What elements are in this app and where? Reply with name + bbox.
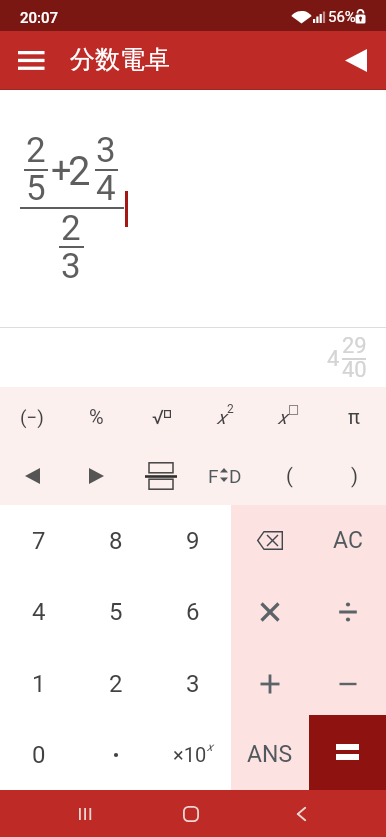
button[interactable]: 0 xyxy=(0,719,77,790)
button[interactable] xyxy=(167,790,215,837)
button[interactable]: ANS xyxy=(231,719,309,790)
button[interactable]: ×10 xyxy=(154,719,231,790)
staticText: 3 xyxy=(186,670,200,698)
staticText: ) xyxy=(351,464,358,487)
button[interactable]: ( xyxy=(257,446,321,505)
staticText: 40 xyxy=(342,357,367,383)
button[interactable] xyxy=(77,719,154,790)
staticText: 5 xyxy=(26,168,46,209)
button[interactable] xyxy=(8,37,54,83)
button[interactable] xyxy=(129,446,193,505)
button[interactable] xyxy=(277,790,325,837)
staticText: 3 xyxy=(61,246,81,287)
staticText: 0 xyxy=(32,741,46,769)
staticText: x xyxy=(217,406,227,428)
staticText: 2 xyxy=(68,148,91,195)
staticText: 分数電卓 xyxy=(70,44,170,75)
button[interactable]: 5 xyxy=(77,576,154,647)
staticText: + xyxy=(51,150,72,192)
button[interactable] xyxy=(64,446,128,505)
staticText: F xyxy=(208,465,219,487)
staticText: 3 xyxy=(96,130,116,171)
staticText: ( xyxy=(286,464,293,487)
button[interactable]: 4 xyxy=(0,576,77,647)
staticText: 2 xyxy=(109,670,123,698)
button[interactable]: AC xyxy=(309,505,386,576)
button[interactable]: x xyxy=(193,387,257,446)
staticText: 4 xyxy=(96,168,116,209)
staticText: π xyxy=(348,405,360,428)
staticText: D xyxy=(229,465,242,487)
staticText: 9 xyxy=(186,527,200,555)
staticText: 6 xyxy=(186,598,200,626)
staticText: x xyxy=(278,406,288,428)
staticText: 56% xyxy=(328,8,356,26)
button[interactable] xyxy=(309,576,386,647)
staticText: ANS xyxy=(247,741,293,768)
staticText: 29 xyxy=(342,333,367,359)
staticText: 4 xyxy=(327,346,340,372)
staticText: 1 xyxy=(32,670,46,698)
button[interactable] xyxy=(0,446,64,505)
button[interactable]: x xyxy=(257,387,321,446)
button[interactable]: 8 xyxy=(77,505,154,576)
button[interactable]: (−) xyxy=(0,387,64,446)
button[interactable]: √ xyxy=(129,387,193,446)
staticText: 8 xyxy=(109,527,123,555)
button[interactable]: ) xyxy=(322,446,386,505)
button[interactable]: 6 xyxy=(154,576,231,647)
button[interactable] xyxy=(231,505,309,576)
button[interactable]: F xyxy=(193,446,257,505)
staticText: (−) xyxy=(20,406,44,428)
staticText: ×10 xyxy=(173,743,207,766)
staticText: 2 xyxy=(227,402,234,416)
button[interactable]: π xyxy=(322,387,386,446)
button[interactable] xyxy=(309,715,386,790)
button[interactable]: 3 xyxy=(154,648,231,719)
button[interactable] xyxy=(231,576,309,647)
button[interactable]: 1 xyxy=(0,648,77,719)
staticText: 20:07 xyxy=(20,9,59,27)
staticText: AC xyxy=(333,527,363,554)
staticText: 4 xyxy=(32,598,46,626)
button[interactable] xyxy=(231,648,309,719)
staticText: x xyxy=(207,740,213,754)
button[interactable] xyxy=(309,648,386,719)
staticText: 7 xyxy=(32,527,46,555)
staticText: √ xyxy=(152,405,164,428)
button[interactable]: 2 xyxy=(77,648,154,719)
button[interactable]: % xyxy=(64,387,128,446)
staticText: % xyxy=(89,405,104,428)
button[interactable]: 7 xyxy=(0,505,77,576)
button[interactable]: 9 xyxy=(154,505,231,576)
button[interactable] xyxy=(332,37,380,83)
staticText: 2 xyxy=(26,130,46,171)
staticText: 5 xyxy=(109,598,123,626)
button[interactable] xyxy=(61,790,109,837)
staticText: □ xyxy=(288,402,300,416)
staticText: 2 xyxy=(61,208,81,249)
